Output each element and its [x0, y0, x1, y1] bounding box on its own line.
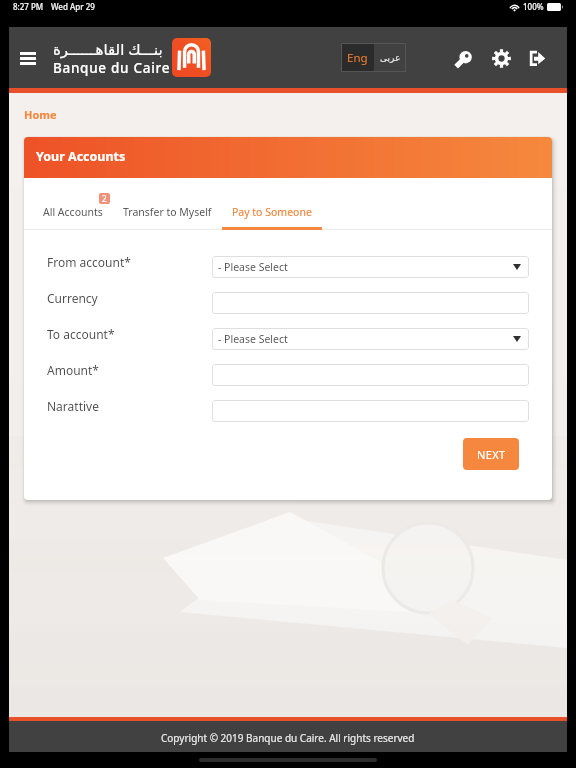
button[interactable]: Change password [449, 44, 477, 72]
staticText: Pay to Someone [232, 205, 312, 219]
staticText: - Please Select [218, 260, 288, 274]
staticText: From account* [47, 254, 131, 270]
staticText: All Accounts [43, 205, 103, 219]
button[interactable]: Pay to Someone [222, 178, 322, 230]
button[interactable]: Menu [13, 43, 43, 73]
staticText: بنـــك القاهــــــرة [53, 39, 163, 59]
button[interactable]: Settings [487, 44, 515, 72]
staticText: 2 [102, 193, 107, 204]
staticText: NEXT [477, 447, 506, 462]
staticText: Currency [47, 290, 98, 306]
staticText: Narattive [47, 398, 99, 414]
button[interactable]: عربى [374, 43, 406, 72]
button[interactable] [212, 292, 529, 314]
staticText: Transfer to Myself [123, 205, 212, 219]
button[interactable]: Home [24, 107, 57, 122]
staticText: Banque du Caire [53, 59, 171, 77]
button[interactable]: Eng [341, 43, 374, 72]
staticText: Copyright © 2019 Banque du Caire. All ri… [161, 731, 415, 745]
button[interactable]: Transfer to Myself [113, 178, 222, 230]
staticText: Your Accounts [36, 148, 126, 165]
staticText: To account* [47, 326, 115, 342]
staticText: 8:27 PM [13, 1, 44, 12]
button[interactable]: - Please Select [212, 256, 529, 278]
button[interactable]: All Accounts [33, 178, 113, 230]
staticText: 100% [523, 1, 544, 12]
staticText: - Please Select [218, 332, 288, 346]
button[interactable] [212, 364, 529, 386]
button[interactable]: - Please Select [212, 328, 529, 350]
staticText: Eng [347, 50, 368, 66]
staticText: Amount* [47, 362, 99, 378]
button[interactable] [212, 400, 529, 422]
staticText: عربى [380, 53, 401, 63]
button[interactable]: Logout [523, 44, 551, 72]
button[interactable]: NEXT [463, 438, 519, 470]
staticText: Wed Apr 29 [51, 1, 95, 12]
